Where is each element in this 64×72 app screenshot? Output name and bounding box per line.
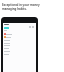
button[interactable] <box>3 33 36 36</box>
button[interactable] <box>3 36 36 39</box>
button[interactable] <box>3 42 36 45</box>
button[interactable] <box>3 50 36 53</box>
button[interactable] <box>3 44 36 47</box>
button[interactable] <box>4 27 9 29</box>
button[interactable] <box>3 53 36 56</box>
staticText: Exceptional in your money managing habit… <box>2 3 52 11</box>
button[interactable] <box>3 39 36 42</box>
button[interactable] <box>3 47 36 50</box>
